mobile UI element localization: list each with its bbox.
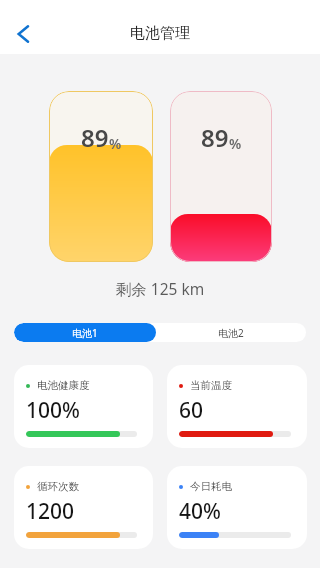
staticText: 剩余 125 km [0,278,320,299]
staticText: 电池1 [72,326,98,340]
button[interactable]: 循环次数 [14,466,153,549]
button[interactable]: Back [9,20,37,48]
staticText: 电池管理 [130,24,190,43]
staticText: 40% [179,497,221,526]
staticText: 今日耗电 [190,480,232,493]
staticText: % [109,134,122,153]
button[interactable]: 当前温度 [167,365,307,448]
staticText: 电池2 [218,326,244,340]
button[interactable]: 电池健康度 [14,365,153,448]
staticText: 电池健康度 [37,379,90,392]
staticText: 100% [26,396,80,425]
staticText: 当前温度 [190,379,232,392]
staticText: 1200 [26,497,75,526]
staticText: 循环次数 [37,480,79,493]
staticText: 89 [201,121,229,154]
button[interactable]: 89 [49,91,153,262]
button[interactable]: 电池2 [156,323,306,342]
button[interactable]: 89 [170,91,272,262]
staticText: 89 [81,121,109,154]
staticText: 60 [179,396,204,425]
button[interactable]: 电池1 [14,323,156,342]
staticText: % [229,134,242,153]
button[interactable]: 今日耗电 [167,466,307,549]
